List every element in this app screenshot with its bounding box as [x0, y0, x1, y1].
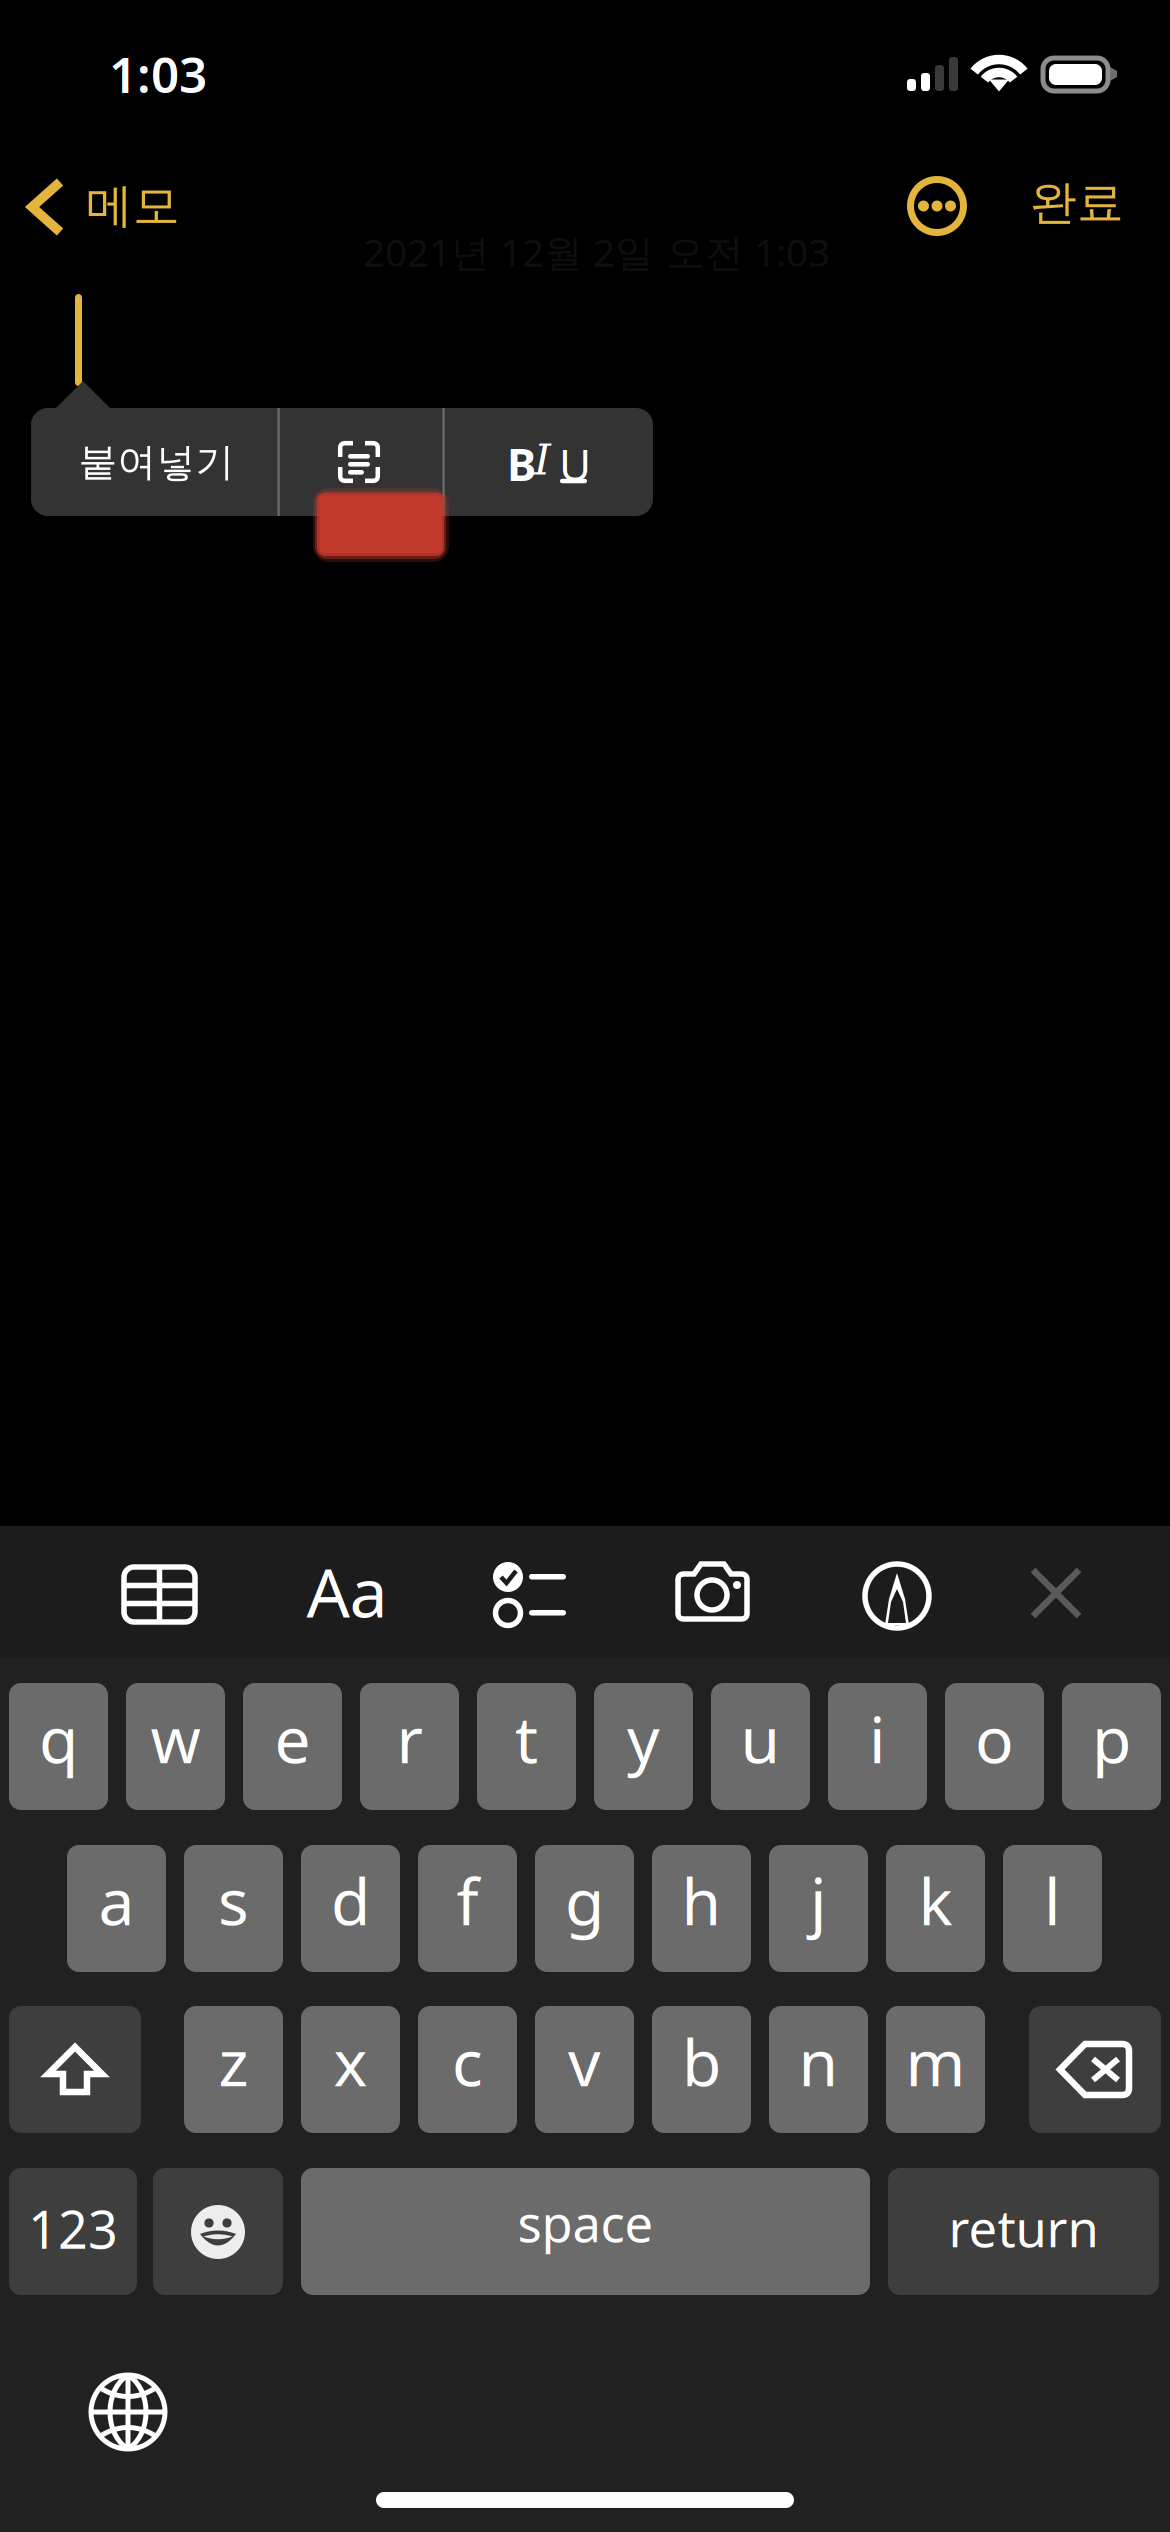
- button[interactable]: j: [769, 1845, 868, 1972]
- button[interactable]: n: [769, 2006, 868, 2133]
- button[interactable]: a: [67, 1845, 166, 1972]
- button[interactable]: i: [828, 1683, 927, 1810]
- staticText: p: [1092, 1696, 1131, 1781]
- button[interactable]: z: [184, 2006, 283, 2133]
- staticText: b: [682, 2019, 721, 2104]
- button[interactable]: Camera: [675, 1561, 753, 1625]
- button[interactable]: Close: [1029, 1566, 1083, 1620]
- staticText: 메모: [86, 177, 180, 234]
- button[interactable]: 붙여넣기: [31, 408, 272, 516]
- staticText: z: [218, 2019, 248, 2104]
- button[interactable]: 메모: [0, 156, 210, 276]
- button[interactable]: Note text: [0, 280, 1170, 1526]
- staticText: I: [534, 435, 551, 484]
- button[interactable]: Delete: [1029, 2006, 1161, 2133]
- button[interactable]: y: [594, 1683, 693, 1810]
- button[interactable]: m: [886, 2006, 985, 2133]
- staticText: 붙여넣기: [78, 438, 234, 486]
- staticText: f: [456, 1858, 478, 1943]
- button[interactable]: f: [418, 1845, 517, 1972]
- staticText: k: [918, 1858, 952, 1943]
- staticText: j: [810, 1858, 827, 1943]
- button[interactable]: h: [652, 1845, 751, 1972]
- button[interactable]: Format: [445, 408, 653, 516]
- button[interactable]: 123: [9, 2168, 137, 2295]
- button[interactable]: r: [360, 1683, 459, 1810]
- button[interactable]: Checklist: [493, 1562, 567, 1628]
- button[interactable]: u: [711, 1683, 810, 1810]
- staticText: g: [565, 1858, 604, 1943]
- staticText: y: [627, 1696, 660, 1781]
- staticText: B: [507, 435, 536, 493]
- button[interactable]: e: [243, 1683, 342, 1810]
- button[interactable]: w: [126, 1683, 225, 1810]
- staticText: o: [975, 1696, 1014, 1781]
- staticText: l: [1044, 1858, 1061, 1943]
- staticText: n: [798, 2019, 838, 2104]
- button[interactable]: q: [9, 1683, 108, 1810]
- staticText: i: [869, 1696, 886, 1781]
- staticText: a: [98, 1858, 134, 1943]
- button[interactable]: Next keyboard: [88, 2372, 168, 2452]
- button[interactable]: c: [418, 2006, 517, 2133]
- button[interactable]: Scan Text: [274, 408, 444, 516]
- button[interactable]: k: [886, 1845, 985, 1972]
- staticText: 1:03: [109, 41, 207, 106]
- button[interactable]: space: [301, 2168, 870, 2295]
- staticText: m: [905, 2019, 965, 2104]
- staticText: 123: [28, 2194, 118, 2263]
- staticText: space: [517, 2189, 653, 2256]
- staticText: h: [681, 1858, 721, 1943]
- staticText: 완료: [1030, 174, 1124, 231]
- staticText: 2021년 12월 2일 오전 1:03: [363, 226, 830, 277]
- button[interactable]: v: [535, 2006, 634, 2133]
- button[interactable]: g: [535, 1845, 634, 1972]
- staticText: Aa: [306, 1546, 387, 1636]
- staticText: x: [333, 2019, 367, 2104]
- button[interactable]: o: [945, 1683, 1044, 1810]
- button[interactable]: b: [652, 2006, 751, 2133]
- staticText: v: [568, 2019, 601, 2104]
- staticText: e: [274, 1696, 310, 1781]
- button[interactable]: x: [301, 2006, 400, 2133]
- button[interactable]: p: [1062, 1683, 1161, 1810]
- staticText: d: [331, 1858, 370, 1943]
- button[interactable]: return: [888, 2168, 1159, 2295]
- button[interactable]: Shift: [9, 2006, 141, 2133]
- button[interactable]: s: [184, 1845, 283, 1972]
- button[interactable]: Table: [121, 1564, 199, 1626]
- staticText: return: [948, 2194, 1098, 2261]
- staticText: s: [218, 1858, 249, 1943]
- button[interactable]: 완료: [1024, 164, 1156, 248]
- button[interactable]: l: [1003, 1845, 1102, 1972]
- button[interactable]: d: [301, 1845, 400, 1972]
- staticText: U: [559, 435, 591, 493]
- button[interactable]: Emoji: [153, 2168, 283, 2295]
- staticText: q: [39, 1696, 78, 1781]
- staticText: u: [740, 1696, 780, 1781]
- button[interactable]: Markup: [862, 1561, 932, 1631]
- staticText: w: [150, 1696, 200, 1781]
- button[interactable]: t: [477, 1683, 576, 1810]
- staticText: c: [452, 2019, 483, 2104]
- staticText: t: [515, 1696, 538, 1781]
- button[interactable]: More: [895, 164, 979, 248]
- button[interactable]: Format: [299, 1553, 395, 1629]
- staticText: r: [396, 1696, 422, 1781]
